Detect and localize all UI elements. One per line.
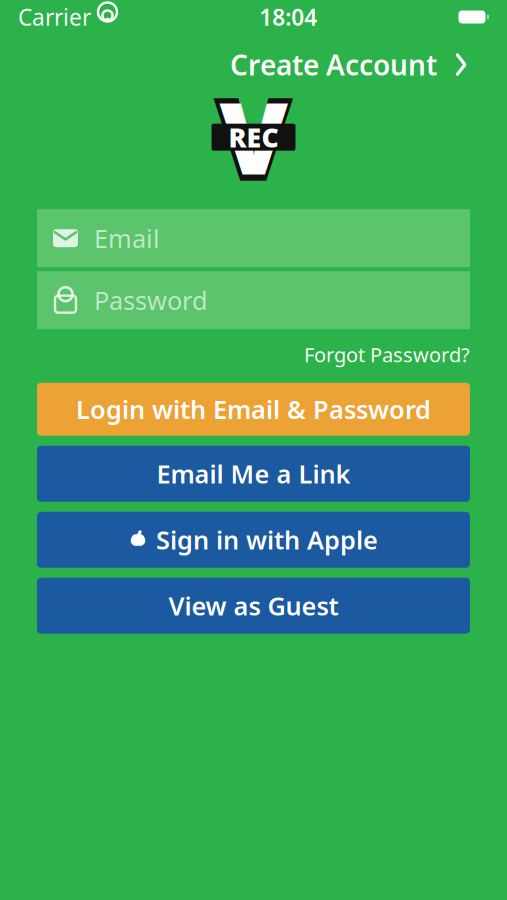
staticText: Password [94, 283, 208, 317]
button[interactable]: View as Guest [37, 578, 470, 634]
button[interactable]: Forgot Password? [304, 338, 470, 371]
staticText: 18:04 [259, 2, 317, 32]
staticText: V [213, 60, 293, 212]
button[interactable]: Email Me a Link [37, 446, 470, 502]
button[interactable]: Sign in with Apple [37, 512, 470, 568]
button[interactable]: Create Account [226, 40, 473, 89]
staticText: Email Me a Link [156, 457, 350, 490]
staticText: Forgot Password? [304, 341, 470, 368]
staticText: Email [94, 221, 160, 255]
staticText: Create Account [230, 46, 437, 83]
staticText: Login with Email & Password [76, 392, 431, 426]
staticText: View as Guest [168, 589, 338, 622]
button[interactable]: Password [37, 271, 470, 329]
staticText: Carrier [18, 2, 91, 32]
staticText: Sign in with Apple [156, 523, 378, 556]
button[interactable]: Email [37, 209, 470, 267]
staticText: REC [228, 119, 278, 155]
button[interactable]: Login with Email & Password [37, 383, 470, 436]
staticText: V [219, 71, 287, 202]
